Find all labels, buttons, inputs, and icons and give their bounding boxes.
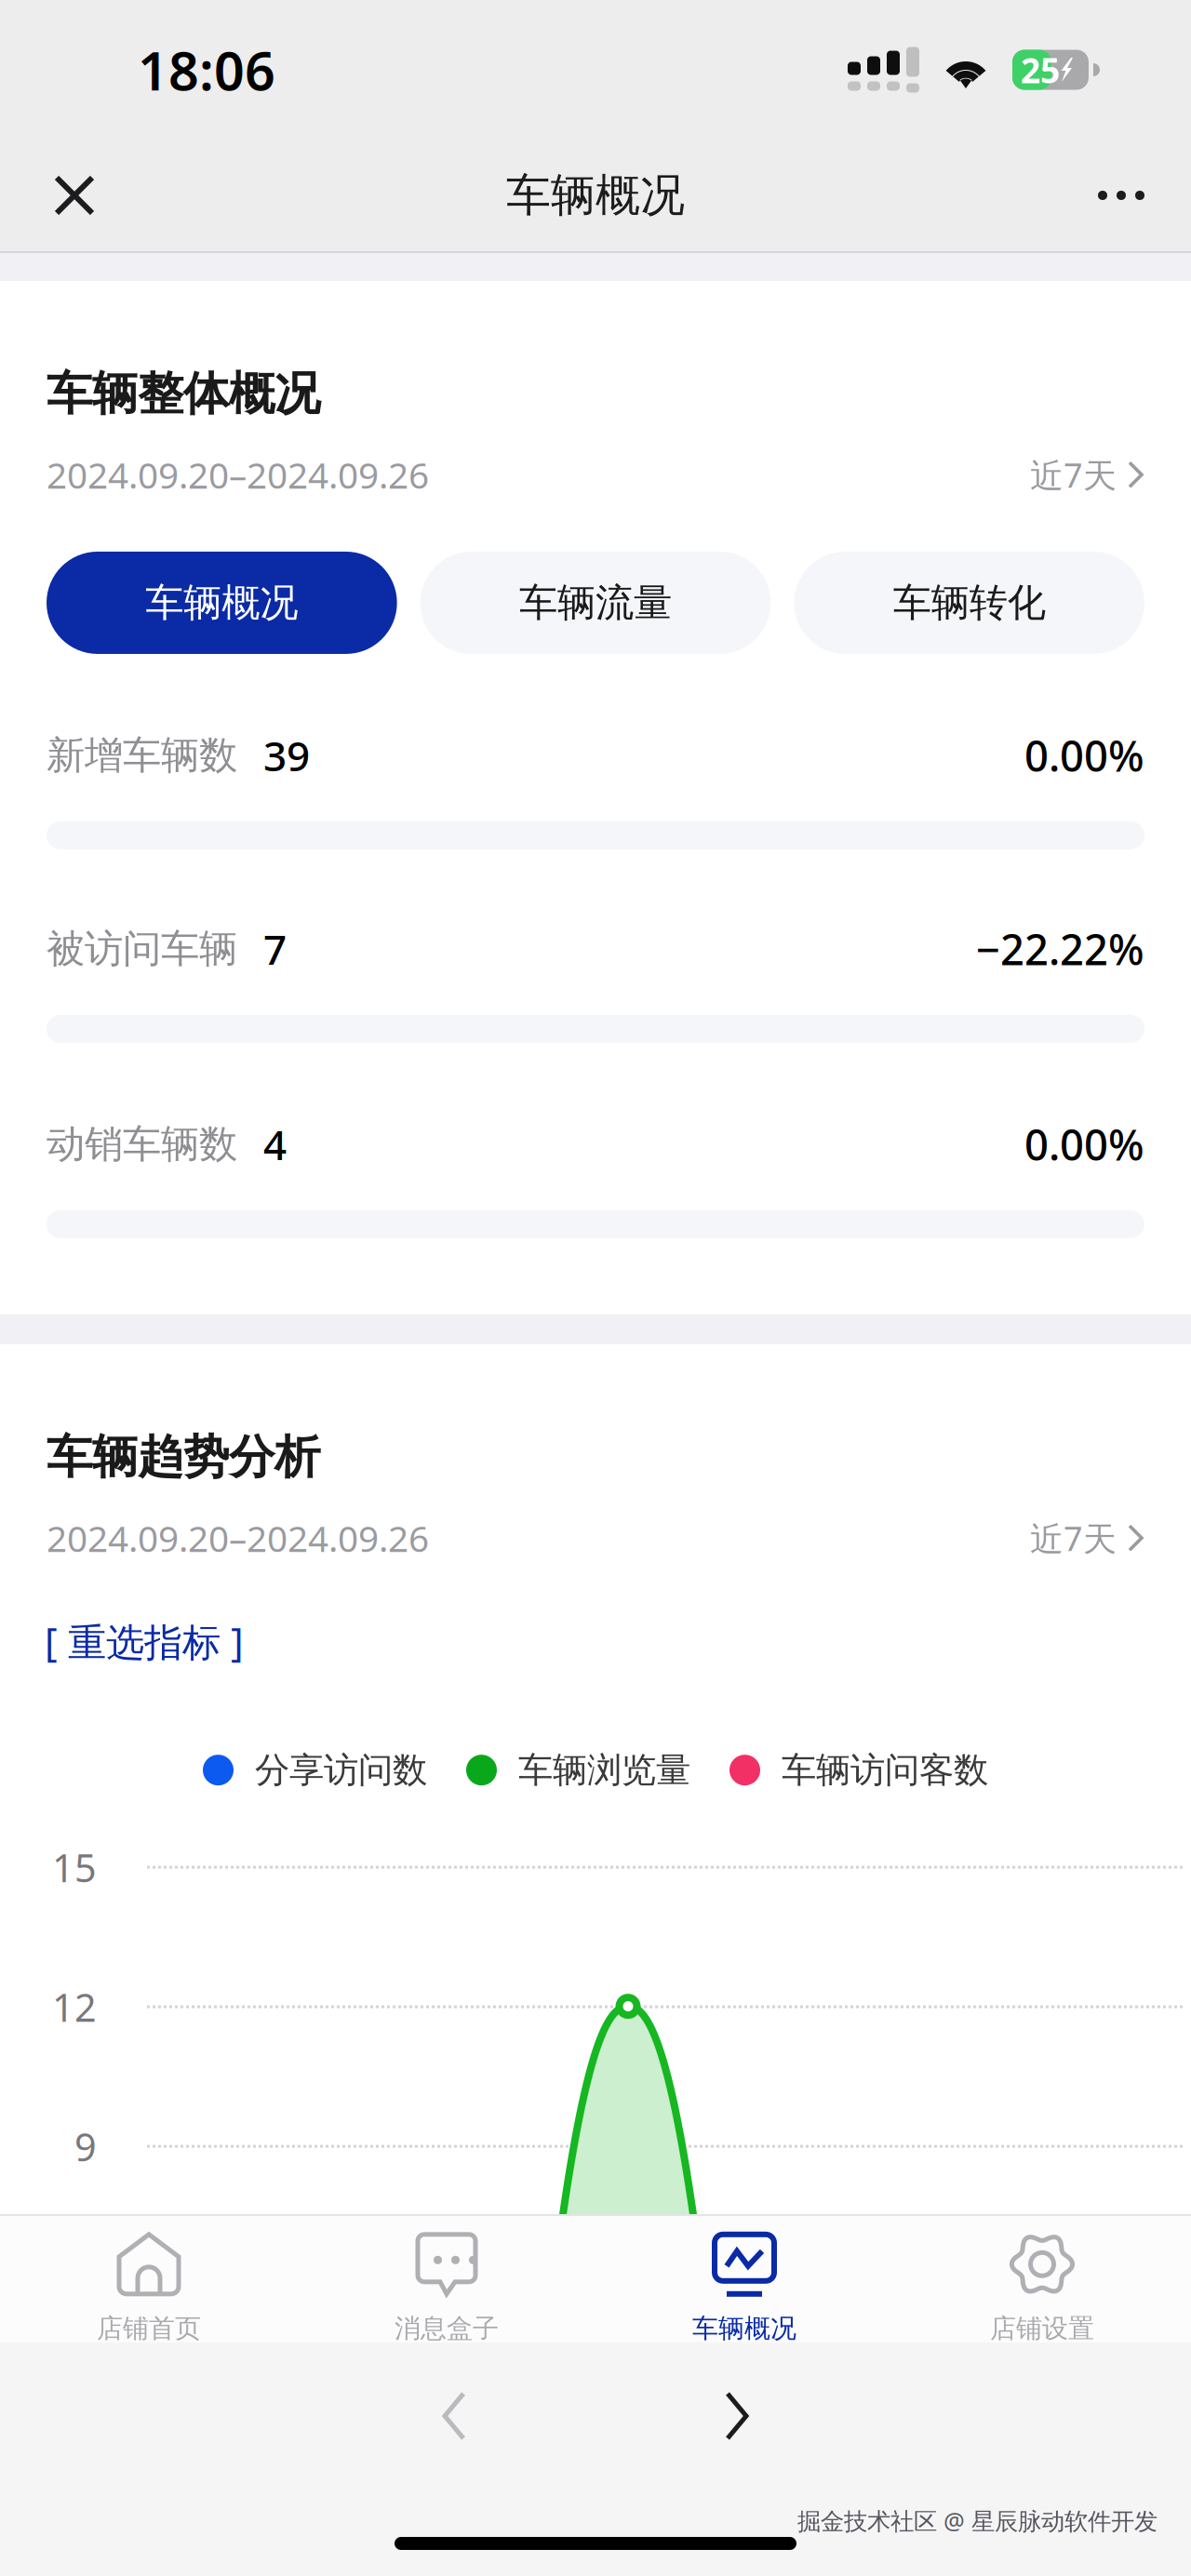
staticText: 0.00% <box>1024 727 1144 783</box>
button[interactable]: 消息盒子 <box>298 2216 595 2342</box>
staticText: 消息盒子 <box>395 2313 499 2345</box>
staticText: 2024.09.20–2024.09.26 <box>47 451 429 499</box>
staticText: 车辆整体概况 <box>47 366 320 422</box>
staticText: 近7天 <box>1030 1516 1117 1560</box>
staticText: 动销车辆数 <box>47 1121 237 1168</box>
staticText: 车辆概况 <box>506 168 685 223</box>
button[interactable]: 近7天 <box>1030 452 1144 497</box>
staticText: 被访问车辆 <box>47 925 237 973</box>
staticText: 12 <box>52 1981 97 2032</box>
button[interactable]: 车辆概况 <box>595 2216 893 2342</box>
staticText: 近7天 <box>1030 452 1117 497</box>
button[interactable]: 近7天 <box>1030 1516 1144 1560</box>
staticText: 掘金技术社区 @ 星辰脉动软件开发 <box>797 2505 1158 2536</box>
staticText: −22.22% <box>976 921 1144 977</box>
staticText: 18:06 <box>138 34 275 105</box>
staticText: 店铺设置 <box>990 2313 1094 2345</box>
staticText: 25 <box>1021 47 1060 93</box>
button[interactable]: Close <box>54 144 156 247</box>
button[interactable]: 店铺首页 <box>0 2216 298 2342</box>
staticText: 车辆趋势分析 <box>47 1429 320 1485</box>
button[interactable]: 店铺设置 <box>893 2216 1191 2342</box>
staticText: 15 <box>52 1842 97 1893</box>
staticText: 39 <box>263 728 310 782</box>
button[interactable]: [ 重选指标 ] <box>45 1616 244 1667</box>
button[interactable]: More options <box>1042 144 1144 247</box>
staticText: 车辆概况 <box>692 2313 796 2345</box>
staticText: 车辆转化 <box>893 579 1046 626</box>
button[interactable]: Back <box>409 2371 499 2461</box>
staticText: 车辆浏览量 <box>518 1749 690 1791</box>
button[interactable]: Forward <box>692 2371 782 2461</box>
button[interactable]: 车辆概况 <box>47 552 397 654</box>
staticText: 9 <box>74 2121 97 2172</box>
staticText: 车辆概况 <box>145 579 298 626</box>
staticText: 7 <box>263 922 287 976</box>
staticText: 分享访问数 <box>255 1749 427 1791</box>
staticText: 新增车辆数 <box>47 732 237 779</box>
staticText: 车辆访问客数 <box>782 1749 988 1791</box>
staticText: 2024.09.20–2024.09.26 <box>47 1514 429 1562</box>
staticText: 店铺首页 <box>97 2313 201 2345</box>
staticText: 0.00% <box>1024 1116 1144 1172</box>
staticText: [ 重选指标 ] <box>45 1616 244 1667</box>
staticText: 车辆流量 <box>519 579 672 626</box>
button[interactable]: 车辆转化 <box>794 552 1144 654</box>
button[interactable]: 车辆流量 <box>420 552 771 654</box>
staticText: 4 <box>263 1117 287 1171</box>
